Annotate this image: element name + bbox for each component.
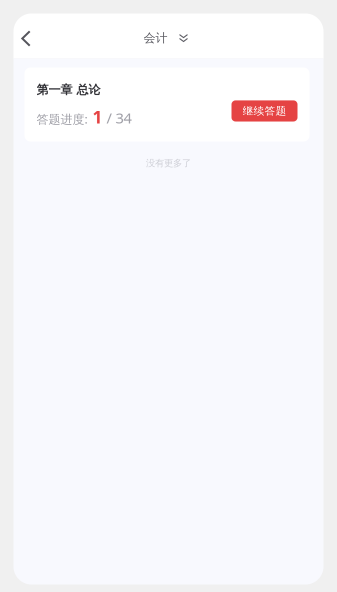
button[interactable]: 继续答题: [231, 100, 297, 121]
staticText: 第一章 总论: [36, 82, 100, 97]
staticText: 答题进度:: [36, 111, 87, 127]
staticText: 会计: [143, 31, 167, 45]
staticText: 没有更多了: [146, 157, 191, 169]
staticText: 1: [87, 105, 102, 128]
button[interactable]: Back: [11, 19, 41, 57]
staticText: 继续答题: [242, 104, 286, 117]
staticText: / 34: [102, 108, 131, 128]
